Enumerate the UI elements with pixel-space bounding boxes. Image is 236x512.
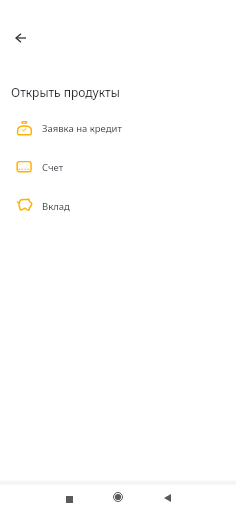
button[interactable]: Счет <box>0 148 236 186</box>
button[interactable]: Заявка на кредит <box>0 109 236 147</box>
staticText: Заявка на кредит <box>42 122 122 135</box>
button[interactable]: Back <box>5 22 37 54</box>
button[interactable]: Back <box>154 485 180 511</box>
button[interactable]: Home <box>105 484 131 510</box>
staticText: Открыть продукты <box>11 84 120 100</box>
staticText: Вклад <box>42 200 70 213</box>
button[interactable]: Recent apps <box>56 486 82 512</box>
staticText: Счет <box>42 161 64 174</box>
button[interactable]: Вклад <box>0 187 236 225</box>
